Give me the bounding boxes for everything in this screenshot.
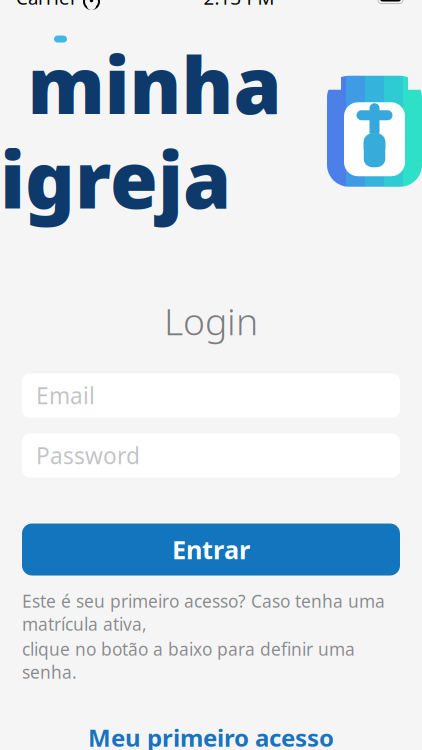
- staticText: Meu primeiro acesso: [88, 722, 334, 750]
- staticText: minha: [27, 32, 281, 135]
- button[interactable]: Password: [22, 433, 400, 477]
- button[interactable]: Entrar: [22, 523, 400, 575]
- staticText: Email: [36, 380, 95, 411]
- staticText: Password: [36, 440, 140, 471]
- staticText: Carrier: [16, 0, 78, 10]
- staticText: clique no botão a baixo para definir uma…: [22, 637, 355, 683]
- staticText: Entrar: [172, 533, 250, 566]
- button[interactable]: Meu primeiro acesso: [22, 716, 400, 750]
- staticText: Este é seu primeiro acesso? Caso tenha u…: [22, 589, 385, 635]
- button[interactable]: Email: [22, 373, 400, 417]
- staticText: Login: [164, 296, 258, 345]
- staticText: 2:13 PM: [203, 0, 274, 10]
- staticText: igreja: [0, 127, 231, 230]
